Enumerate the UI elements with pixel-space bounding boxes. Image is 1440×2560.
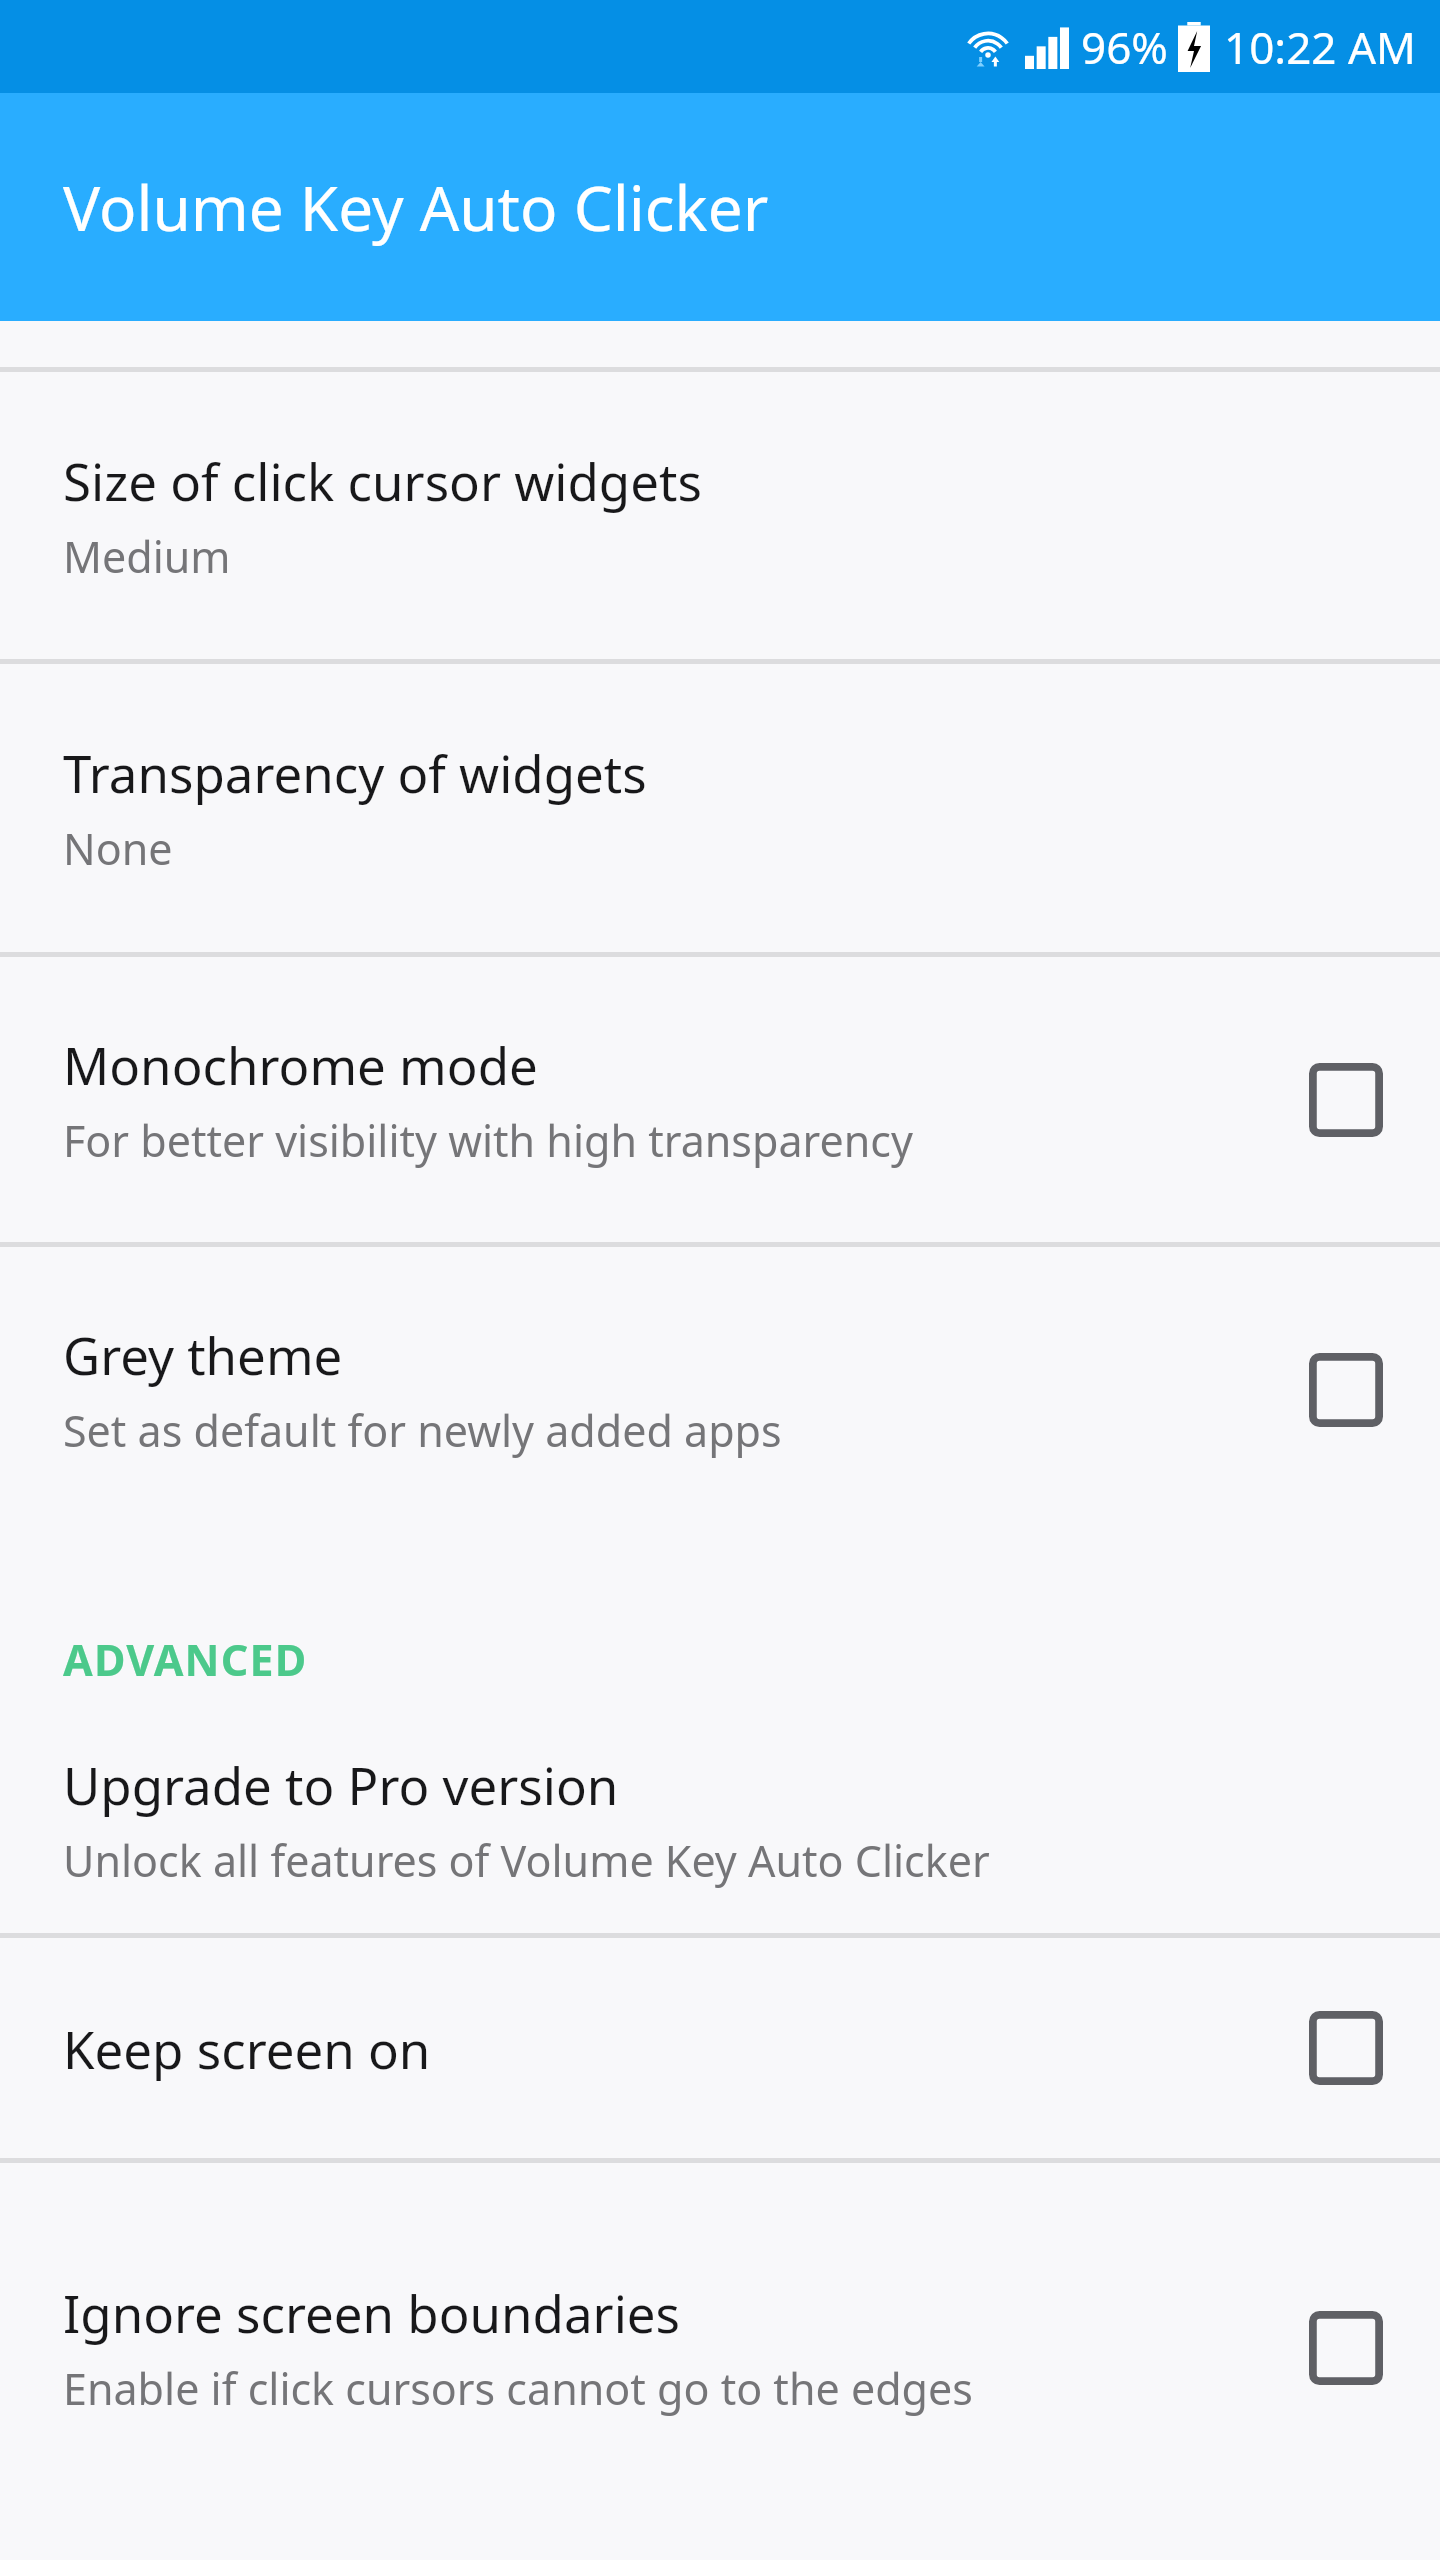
button[interactable]: Monochrome mode [0, 957, 1440, 1242]
button[interactable]: Transparency of widgets [0, 664, 1440, 952]
staticText: Medium [63, 527, 231, 586]
staticText: Transparency of widgets [63, 738, 647, 807]
staticText: 96% [1081, 17, 1168, 77]
staticText: Monochrome mode [63, 1030, 538, 1099]
staticText: For better visibility with high transpar… [63, 1111, 913, 1170]
staticText: Unlock all features of Volume Key Auto C… [63, 1831, 990, 1890]
button[interactable]: Upgrade to Pro version [0, 1707, 1440, 1933]
staticText: Size of click cursor widgets [63, 446, 702, 515]
staticText: Set as default for newly added apps [63, 1401, 782, 1460]
staticText: Volume Key Auto Clicker [63, 165, 769, 249]
staticText: None [63, 819, 173, 878]
staticText: Grey theme [63, 1320, 343, 1389]
button[interactable]: Ignore screen boundaries [0, 2163, 1440, 2533]
button[interactable]: Ignore screen boundaries [1290, 2292, 1402, 2404]
button[interactable]: Grey theme [0, 1247, 1440, 1532]
button[interactable]: Keep screen on [1290, 1992, 1402, 2104]
button[interactable]: Grey theme [1290, 1334, 1402, 1446]
staticText: Enable if click cursors cannot go to the… [63, 2359, 973, 2418]
button[interactable]: Size of click cursor widgets [0, 372, 1440, 659]
staticText: Upgrade to Pro version [63, 1750, 619, 1819]
staticText: ADVANCED [63, 1630, 308, 1689]
button[interactable]: Keep screen on [0, 1938, 1440, 2158]
staticText: Keep screen on [63, 2014, 431, 2083]
staticText: 10:22 AM [1224, 17, 1416, 77]
staticText: Ignore screen boundaries [63, 2278, 680, 2347]
button[interactable]: Monochrome mode [1290, 1044, 1402, 1156]
